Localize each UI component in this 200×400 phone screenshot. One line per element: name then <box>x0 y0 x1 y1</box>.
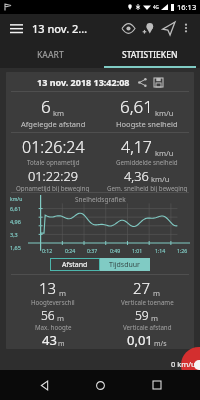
staticText: 0:12 <box>42 247 53 254</box>
staticText: 4,36 <box>124 167 149 184</box>
staticText: m <box>151 313 159 323</box>
staticText: Hoogteverschil <box>31 298 75 306</box>
staticText: m/s <box>154 339 167 349</box>
staticText: m <box>153 288 161 298</box>
staticText: Max. hoogte <box>35 323 72 331</box>
staticText: 6,61 <box>10 205 21 212</box>
button[interactable]: Home <box>87 372 113 398</box>
staticText: 0:24 <box>65 247 76 254</box>
staticText: 0 km/u <box>171 359 196 369</box>
staticText: km <box>53 108 65 118</box>
staticText: Totale opnametijd <box>27 158 80 166</box>
staticText: m <box>57 313 65 323</box>
staticText: Verticale afstand <box>123 323 172 331</box>
staticText: 43 <box>42 331 57 349</box>
staticText: 01:22:29 <box>28 167 79 184</box>
staticText: Gem. snelheid bij beweging <box>107 184 188 192</box>
button[interactable]: Share <box>136 76 148 88</box>
button[interactable]: Menu <box>6 18 26 38</box>
staticText: 1:14 <box>155 247 166 254</box>
staticText: km/u <box>155 108 174 118</box>
staticText: 0:49 <box>110 247 121 254</box>
button[interactable]: Back <box>31 372 57 398</box>
staticText: Opnametijd bij beweging <box>16 184 90 192</box>
staticText: Verticale toename <box>121 298 174 306</box>
staticText: 4,17 <box>121 136 153 158</box>
staticText: 59 <box>135 307 149 323</box>
button[interactable]: Save <box>152 76 164 88</box>
staticText: 13 <box>39 278 57 298</box>
staticText: Gemiddelde snelheid <box>116 158 178 166</box>
button[interactable]: Tijdsduur <box>100 258 150 271</box>
staticText: 13 nov. 2018 13:42:08 <box>37 76 130 88</box>
staticText: 1,65 <box>10 244 21 251</box>
staticText: m <box>58 339 65 349</box>
staticText: km/u <box>10 196 23 203</box>
staticText: km/u <box>155 148 174 158</box>
button[interactable]: Record <box>181 347 200 383</box>
staticText: m <box>59 288 67 298</box>
staticText: 01:26:24 <box>22 136 85 158</box>
button[interactable]: Afstand <box>50 258 100 271</box>
button[interactable]: Add marker <box>138 18 158 38</box>
staticText: 6 <box>41 95 51 118</box>
button[interactable]: Navigate <box>158 18 178 38</box>
staticText: Hoogste snelheid <box>116 119 178 129</box>
staticText: 16:13 <box>177 2 197 12</box>
staticText: 1:01 <box>132 247 143 254</box>
staticText: 13 nov. 2… <box>32 21 88 36</box>
button[interactable]: Recent apps <box>144 372 170 398</box>
staticText: 27 <box>133 278 151 298</box>
staticText: 0,01 <box>127 331 153 349</box>
staticText: 6,61 <box>120 95 153 118</box>
staticText: STATISTIEKEN <box>122 49 178 61</box>
staticText: 1:26 <box>177 247 188 254</box>
button[interactable]: Visibility <box>118 18 138 38</box>
staticText: km/u <box>151 174 170 184</box>
button[interactable]: STATISTIEKEN <box>100 42 200 68</box>
button[interactable]: More options <box>178 20 194 36</box>
staticText: 4,96 <box>10 218 21 225</box>
staticText: Tijdsduur <box>109 260 141 270</box>
staticText: 4G <box>153 4 159 10</box>
staticText: Snelheidsgrafiek <box>75 195 126 204</box>
staticText: 56 <box>41 307 55 323</box>
staticText: 3,3 <box>10 231 18 238</box>
staticText: 0:37 <box>87 247 98 254</box>
staticText: KAART <box>37 49 64 61</box>
staticText: Afstand <box>62 260 88 270</box>
button[interactable]: KAART <box>0 42 100 68</box>
staticText: Afgelegde afstand <box>21 119 86 129</box>
